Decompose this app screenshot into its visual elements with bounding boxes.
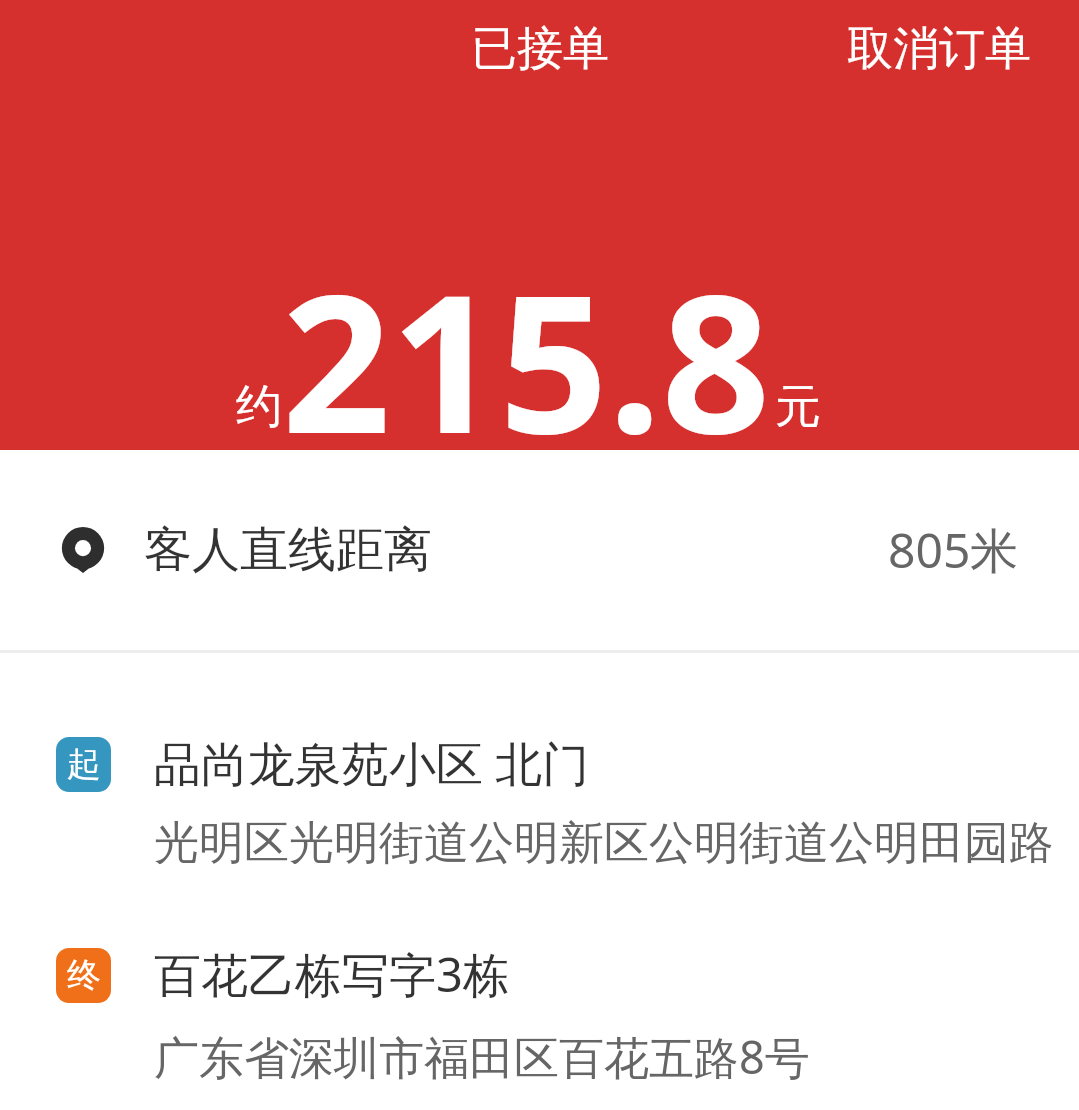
staticText: 元 [775, 378, 821, 436]
other: Location [60, 527, 106, 573]
staticText: 约 [236, 378, 282, 436]
staticText: 取消订单 [847, 20, 1031, 78]
staticText: 805米 [888, 517, 1019, 583]
staticText: 广东省深圳市福田区百花五路8号 [154, 1026, 810, 1087]
button[interactable]: 取消订单 [839, 12, 1039, 86]
staticText: 215.8 [282, 230, 771, 450]
staticText: 起 [67, 743, 101, 786]
button[interactable]: 起 [0, 653, 1079, 1087]
staticText: 百花乙栋写字3栋 [154, 942, 510, 1006]
staticText: 已接单 [471, 20, 609, 78]
button[interactable]: Location [0, 450, 1079, 650]
staticText: 终 [67, 954, 101, 997]
staticText: 品尚龙泉苑小区 北门 [154, 731, 590, 795]
staticText: 客人直线距离 [144, 520, 432, 580]
staticText: 光明区光明街道公明新区公明街道公明田园路雪 [154, 815, 1059, 872]
